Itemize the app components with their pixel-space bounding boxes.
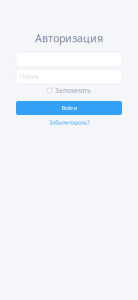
staticText: Войти xyxy=(61,104,76,112)
button[interactable]: Забыли пароль? xyxy=(49,119,89,126)
staticText: Запомнить xyxy=(55,86,91,95)
staticText: Забыли пароль? xyxy=(49,119,89,126)
staticText: Пароль xyxy=(20,73,39,80)
button[interactable]: Войти xyxy=(16,101,122,115)
button[interactable]: Запомнить xyxy=(47,87,91,94)
staticText: Авторизация xyxy=(35,31,103,45)
